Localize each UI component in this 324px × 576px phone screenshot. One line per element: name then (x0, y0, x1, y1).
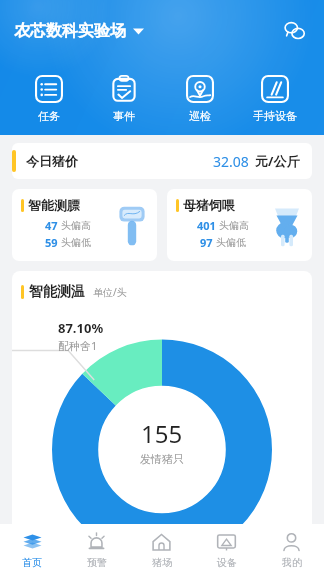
staticText: 设备 (217, 556, 237, 569)
button[interactable]: 我的 (259, 524, 324, 576)
staticText: 农芯数科实验场 (14, 21, 126, 41)
staticText: 97 (200, 235, 213, 250)
button[interactable]: 母猪饲喂 (167, 189, 312, 261)
staticText: 47 (45, 218, 58, 233)
staticText: 59 (45, 235, 58, 250)
staticText: 155 (141, 417, 183, 450)
staticText: 预警 (87, 556, 107, 569)
staticText: 头偏低 (61, 236, 91, 249)
button[interactable]: 预警 (64, 524, 129, 576)
staticText: 头偏高 (61, 219, 91, 232)
staticText: 87.10% (58, 319, 104, 337)
button[interactable]: 今日猪价 (12, 143, 312, 179)
button[interactable]: 事件 (91, 73, 157, 125)
staticText: 我的 (282, 556, 302, 569)
staticText: 智能测温 (29, 283, 85, 301)
staticText: 头偏低 (216, 236, 246, 249)
staticText: 单位/头 (93, 285, 127, 299)
staticText: 配种舍1 (58, 338, 98, 353)
staticText: 智能测膘 (28, 197, 80, 213)
button[interactable]: Messages (280, 16, 310, 46)
staticText: 手持设备 (253, 109, 297, 123)
button[interactable]: 手持设备 (242, 73, 308, 125)
button[interactable]: 智能测膘 (12, 189, 157, 261)
staticText: 401 (197, 218, 216, 233)
button[interactable]: 任务 (16, 73, 82, 125)
staticText: 今日猪价 (26, 153, 78, 169)
button[interactable]: 巡检 (167, 73, 233, 125)
staticText: 首页 (22, 556, 42, 569)
staticText: 巡检 (189, 109, 211, 123)
staticText: 元/公斤 (255, 152, 300, 170)
button[interactable]: 猪场 (129, 524, 194, 576)
staticText: 发情猪只 (140, 452, 184, 466)
staticText: 母猪饲喂 (183, 197, 235, 213)
staticText: 头偏高 (219, 219, 249, 232)
staticText: 32.08 (213, 152, 249, 171)
button[interactable]: 首页 (0, 524, 64, 576)
staticText: 猪场 (152, 556, 172, 569)
staticText: 事件 (113, 109, 135, 123)
button[interactable]: 农芯数科实验场 (14, 21, 144, 41)
staticText: 任务 (38, 109, 60, 123)
button[interactable]: 设备 (194, 524, 259, 576)
